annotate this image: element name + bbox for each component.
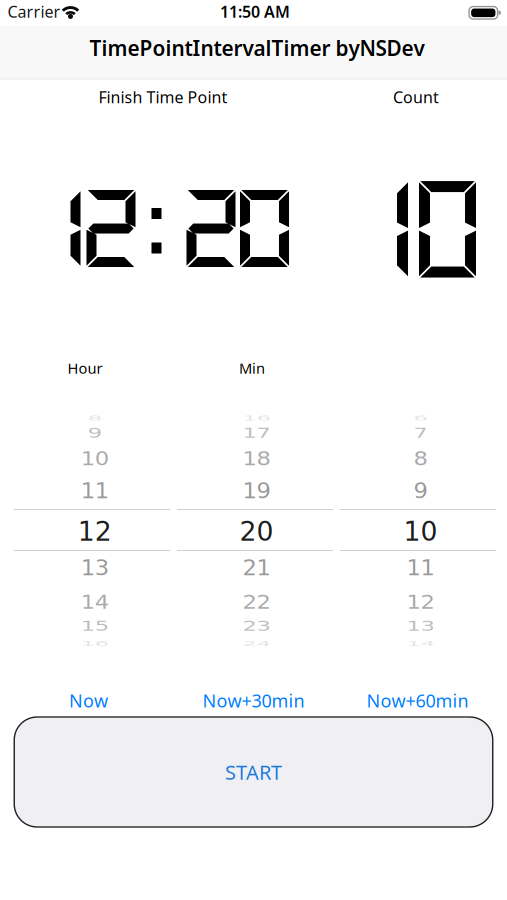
staticText: 11 xyxy=(406,555,434,581)
staticText: START xyxy=(225,759,282,785)
staticText: Min xyxy=(239,358,265,378)
button[interactable]: Now+30min xyxy=(202,688,304,713)
staticText: 12 xyxy=(406,589,434,615)
staticText: TimePointIntervalTimer byNSDev xyxy=(89,34,424,62)
staticText: 22 xyxy=(242,589,270,615)
staticText: 13 xyxy=(406,613,434,639)
staticText: 9 xyxy=(413,478,427,504)
staticText: 17 xyxy=(242,420,270,446)
staticText: 11:50 AM xyxy=(220,1,290,22)
staticText: 8 xyxy=(88,405,102,431)
staticText: 6 xyxy=(413,405,427,431)
staticText: 23 xyxy=(242,613,270,639)
staticText: 9 xyxy=(88,420,102,446)
staticText: Hour xyxy=(67,358,102,378)
staticText: 15 xyxy=(81,613,109,639)
staticText: 10 xyxy=(81,445,109,472)
staticText: 16 xyxy=(81,630,109,657)
staticText: 18 xyxy=(242,445,270,472)
staticText: Finish Time Point xyxy=(98,86,227,108)
staticText: 12 xyxy=(78,516,112,547)
staticText: Now+60min xyxy=(366,688,468,713)
staticText: 11 xyxy=(81,478,109,504)
staticText: 10 xyxy=(403,516,437,547)
staticText: 14 xyxy=(406,630,434,657)
staticText: Now+30min xyxy=(202,688,304,713)
staticText: Carrier xyxy=(7,1,60,22)
button[interactable]: Now xyxy=(69,688,108,713)
staticText: 19 xyxy=(242,478,270,504)
staticText: 14 xyxy=(81,589,109,615)
staticText: 13 xyxy=(81,555,109,581)
staticText: 24 xyxy=(242,630,270,657)
button[interactable]: Now+60min xyxy=(366,688,468,713)
staticText: 16 xyxy=(242,405,270,431)
staticText: 8 xyxy=(413,445,427,472)
staticText: Count xyxy=(393,86,439,108)
button[interactable]: START xyxy=(14,717,493,827)
staticText: 20 xyxy=(239,516,273,547)
staticText: 21 xyxy=(242,555,270,581)
staticText: Now xyxy=(69,688,108,713)
staticText: 7 xyxy=(413,420,427,446)
